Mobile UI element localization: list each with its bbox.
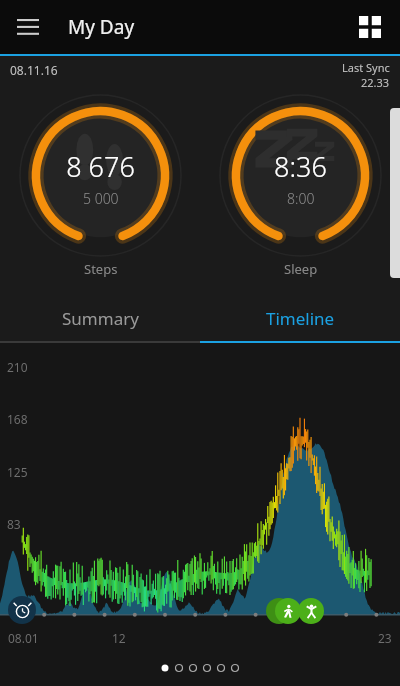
button[interactable]: Alarm <box>8 596 36 624</box>
staticText: Last Sync <box>342 60 390 75</box>
button[interactable]: Page 4 <box>203 664 211 672</box>
staticText: 5 000 <box>83 189 119 208</box>
button[interactable]: Page 1 <box>161 664 169 672</box>
button[interactable]: Activities <box>266 598 344 624</box>
staticText: 168 <box>7 411 28 427</box>
staticText: 08.11.16 <box>10 62 58 78</box>
staticText: My Day <box>68 14 135 40</box>
staticText: Timeline <box>266 307 335 330</box>
staticText: 22.33 <box>361 75 390 90</box>
staticText: 08.01 <box>8 630 39 646</box>
button[interactable]: Switch view <box>348 5 392 49</box>
button[interactable]: 8 676 <box>0 93 200 293</box>
staticText: 83 <box>7 516 21 532</box>
button[interactable]: Page 3 <box>189 664 197 672</box>
button[interactable]: Next card <box>390 108 400 278</box>
staticText: 8 676 <box>66 148 135 185</box>
button[interactable]: Page 2 <box>175 664 183 672</box>
staticText: Summary <box>62 307 139 330</box>
button[interactable]: Page 6 <box>231 664 239 672</box>
staticText: 210 <box>7 359 28 375</box>
button[interactable]: 8:36 <box>200 93 400 293</box>
staticText: 12 <box>112 630 126 646</box>
staticText: 8:36 <box>274 148 327 185</box>
staticText: 23 <box>378 630 392 646</box>
staticText: 125 <box>7 464 28 480</box>
staticText: Sleep <box>284 260 318 278</box>
button[interactable]: Timeline <box>200 293 400 343</box>
button[interactable]: Open navigation menu <box>8 7 48 47</box>
staticText: 8:00 <box>287 189 315 208</box>
staticText: Steps <box>84 260 118 278</box>
button[interactable]: Page 5 <box>217 664 225 672</box>
button[interactable]: Summary <box>0 293 200 343</box>
